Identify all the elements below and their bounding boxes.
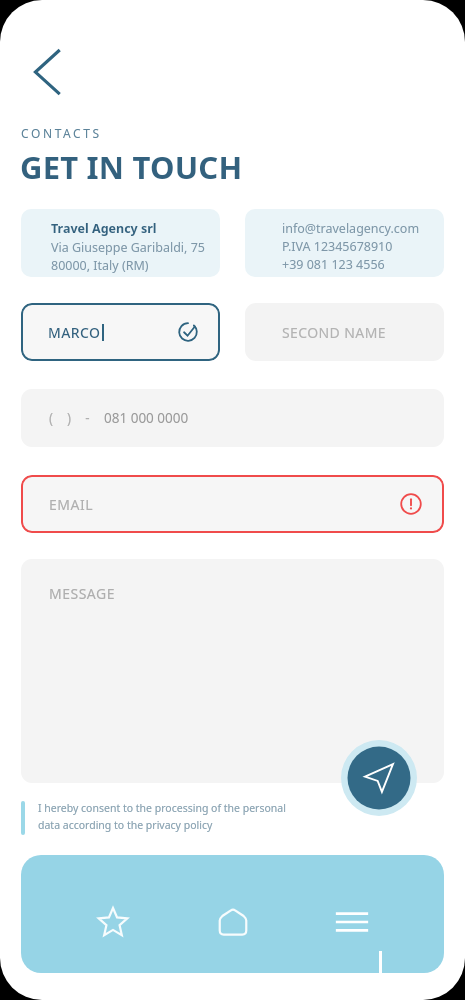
staticText: EMAIL (49, 495, 94, 514)
button[interactable]: SECOND NAME (245, 303, 444, 361)
staticText: CONTACTS (21, 125, 102, 141)
button[interactable]: Favorites (86, 895, 140, 949)
staticText: 081 000 0000 (104, 409, 189, 427)
staticText: info@travelagency.com (282, 220, 420, 237)
staticText: MARCO (48, 323, 101, 342)
staticText: SECOND NAME (282, 323, 386, 342)
staticText: GET IN TOUCH (20, 146, 243, 188)
other: Error (400, 493, 422, 515)
button[interactable]: I hereby consent to the processing of th… (21, 801, 444, 835)
button[interactable]: MARCO (21, 303, 220, 361)
staticText: 80000, Italy (RM) (51, 257, 149, 274)
button[interactable]: ( ) - (21, 389, 444, 447)
staticText: MESSAGE (49, 584, 115, 603)
button[interactable]: EMAIL (21, 475, 444, 533)
staticText: P.IVA 12345678910 (282, 238, 393, 255)
staticText: data according to the privacy policy (38, 818, 213, 832)
button[interactable]: Menu (325, 895, 379, 949)
button[interactable]: info@travelagency.com (245, 209, 444, 277)
staticText: Via Giuseppe Garibaldi, 75 (51, 239, 205, 256)
staticText: ( ) - (49, 409, 90, 427)
button[interactable]: MESSAGE (21, 559, 444, 783)
staticText: +39 081 123 4556 (282, 256, 385, 273)
button[interactable]: Travel Agency srl (21, 209, 220, 277)
button[interactable]: Back (21, 44, 73, 96)
staticText: Travel Agency srl (51, 220, 157, 237)
staticText: I hereby consent to the processing of th… (38, 801, 286, 815)
button[interactable]: Send (341, 740, 417, 816)
button[interactable]: Home (206, 895, 260, 949)
